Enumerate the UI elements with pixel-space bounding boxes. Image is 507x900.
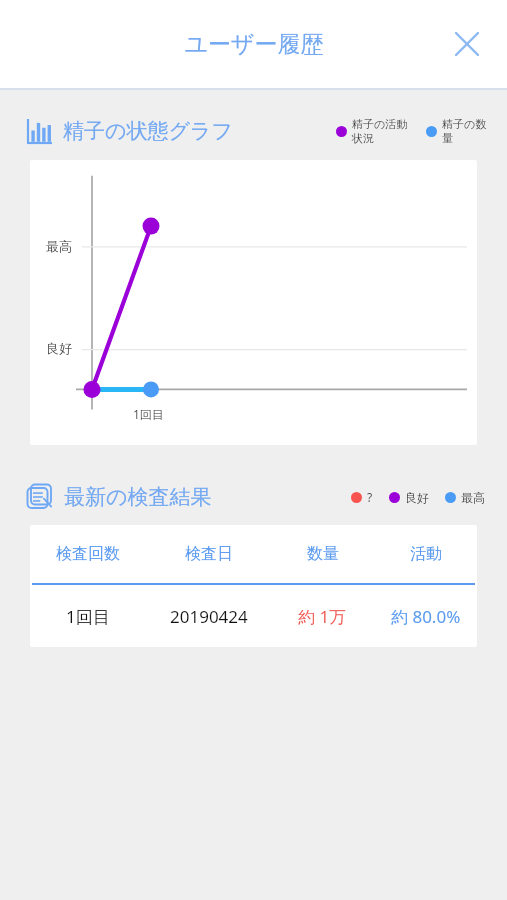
staticText: 検査回数 — [56, 544, 120, 564]
staticText: 良好 — [46, 340, 72, 356]
staticText: 精子の数 — [442, 117, 487, 131]
staticText: 検査日 — [185, 544, 233, 564]
staticText: 最新の検査結果 — [64, 484, 212, 510]
staticText: 約 1万 — [298, 605, 347, 628]
staticText: ? — [367, 489, 373, 505]
staticText: 状況 — [352, 131, 374, 145]
staticText: 最高 — [461, 490, 485, 505]
staticText: ユーザー履歴 — [184, 30, 324, 59]
staticText: 1回目 — [133, 406, 164, 422]
staticText: 活動 — [410, 544, 442, 564]
button[interactable]: 1回目 — [30, 585, 477, 647]
staticText: 数量 — [307, 544, 339, 564]
staticText: 20190424 — [170, 605, 248, 628]
staticText: 量 — [442, 131, 453, 145]
staticText: 最高 — [46, 238, 72, 254]
staticText: 1回目 — [66, 605, 110, 628]
button[interactable]: Close — [443, 20, 491, 68]
staticText: 約 80.0% — [391, 605, 461, 628]
staticText: 精子の活動 — [352, 117, 408, 131]
staticText: 良好 — [405, 490, 429, 505]
staticText: 精子の状態グラフ — [63, 118, 233, 144]
